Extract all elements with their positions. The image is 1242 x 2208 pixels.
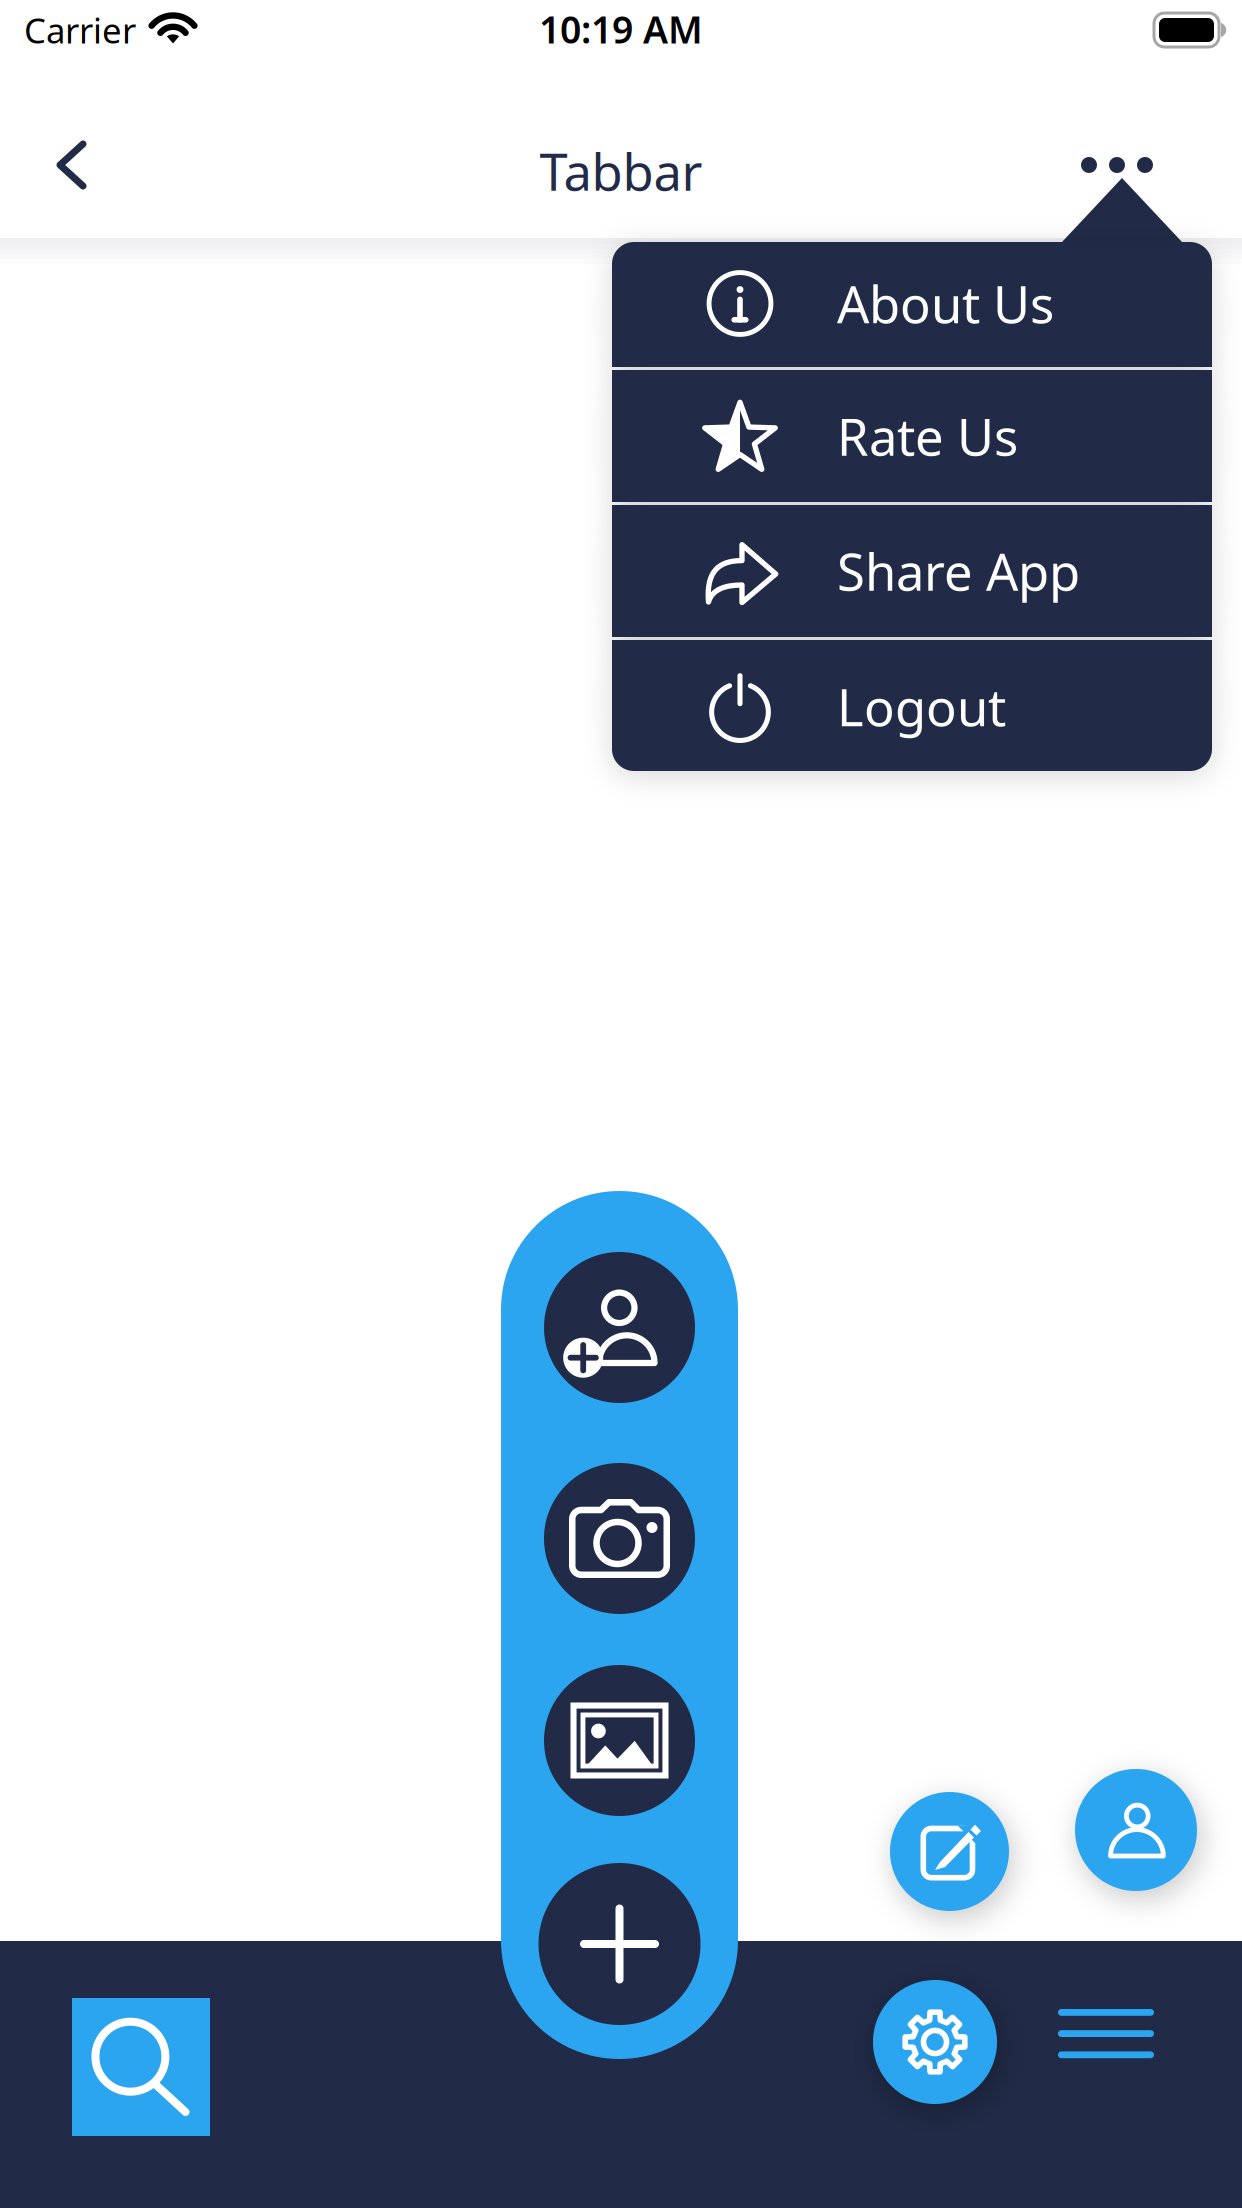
staticText: Rate Us bbox=[837, 402, 1018, 470]
staticText: 10:19 AM bbox=[539, 4, 703, 54]
button[interactable]: Settings bbox=[873, 1980, 997, 2104]
button[interactable]: More options bbox=[1057, 105, 1177, 225]
button[interactable]: Menu bbox=[1058, 2009, 1154, 2059]
staticText: Tabbar bbox=[539, 137, 702, 205]
staticText: About Us bbox=[837, 270, 1054, 337]
staticText: Logout bbox=[837, 673, 1006, 740]
button[interactable]: About Us bbox=[612, 240, 1212, 367]
button[interactable] bbox=[544, 1252, 695, 1403]
staticText: Share App bbox=[837, 537, 1080, 605]
button[interactable] bbox=[544, 1665, 695, 1816]
button[interactable] bbox=[544, 1463, 695, 1614]
staticText: Carrier bbox=[24, 7, 136, 53]
button[interactable]: Rate Us bbox=[612, 370, 1212, 502]
button[interactable]: Profile bbox=[1075, 1769, 1197, 1891]
button[interactable]: Back bbox=[8, 103, 132, 227]
button[interactable]: Search bbox=[72, 1998, 210, 2136]
button[interactable] bbox=[538, 1863, 700, 2025]
button[interactable]: Share App bbox=[612, 505, 1212, 637]
button[interactable]: Logout bbox=[612, 640, 1212, 773]
button[interactable]: Compose bbox=[890, 1792, 1009, 1911]
